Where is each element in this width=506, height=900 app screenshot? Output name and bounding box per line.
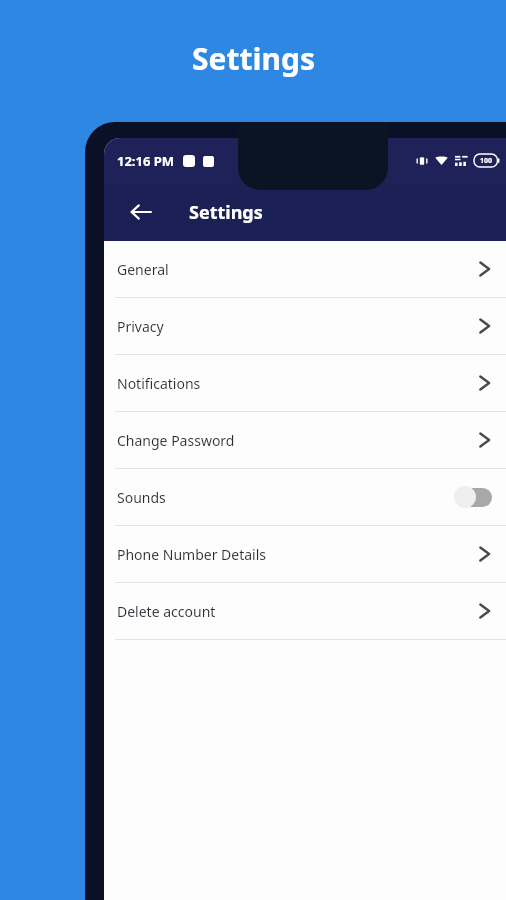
staticText: Settings [192, 38, 315, 79]
button[interactable]: General [104, 241, 506, 298]
staticText: 100 [480, 156, 493, 166]
staticText: Delete account [117, 602, 216, 621]
staticText: Privacy [117, 317, 164, 336]
button[interactable]: Back [124, 195, 158, 229]
staticText: 12:16 PM [117, 152, 175, 170]
staticText: Change Password [117, 431, 235, 450]
button[interactable]: Privacy [104, 298, 506, 355]
staticText: Notifications [117, 374, 201, 393]
button[interactable]: Sounds [104, 469, 506, 526]
staticText: Phone Number Details [117, 545, 267, 564]
button[interactable]: Delete account [104, 583, 506, 640]
button[interactable]: Change Password [104, 412, 506, 469]
button[interactable]: Phone Number Details [104, 526, 506, 583]
button[interactable]: Notifications [104, 355, 506, 412]
staticText: Sounds [117, 488, 166, 507]
button[interactable]: Sounds toggle [454, 486, 492, 508]
staticText: Settings [189, 200, 263, 225]
staticText: General [117, 260, 169, 279]
